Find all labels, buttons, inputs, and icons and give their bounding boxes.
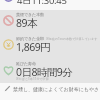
button[interactable]: 4日11:30:45 (0, 0, 100, 10)
button[interactable]: 延びた寿命 (0, 62, 100, 84)
staticText: 4日11:30:45 (17, 0, 67, 4)
button[interactable]: 禁煙できた本数 (0, 13, 100, 35)
button[interactable]: 節約できた金額 (0, 37, 100, 59)
staticText: 0日8時間9分 (16, 65, 73, 79)
staticText: 89本 (16, 16, 37, 30)
staticText: 禁煙できた本数 (16, 12, 44, 17)
staticText: 1,869円 (16, 40, 51, 54)
staticText: 延びた寿命 (16, 61, 36, 66)
button[interactable]: 禁煙し、健康によくてお財布にもやさしい (0, 84, 100, 93)
staticText: 禁煙し、健康によくてお財布にもやさしい (13, 86, 100, 92)
staticText: ※たばこ1本11分で計算 (16, 77, 49, 81)
staticText: 節約できた金額 (16, 36, 44, 41)
staticText: ※現在の1日の本数で計算しています (46, 37, 98, 41)
